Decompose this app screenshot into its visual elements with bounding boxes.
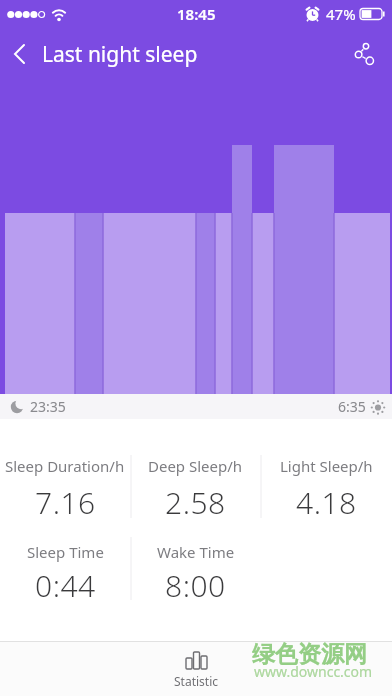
- staticText: Deep Sleep/h: [148, 456, 243, 476]
- staticText: 2.58: [165, 482, 226, 523]
- staticText: www.downcc.com: [254, 662, 373, 681]
- staticText: 4.18: [296, 482, 357, 523]
- staticText: 7.16: [35, 482, 96, 523]
- staticText: 23:35: [30, 397, 66, 416]
- staticText: 0:44: [35, 565, 96, 606]
- staticText: Statistic: [174, 673, 219, 689]
- staticText: 绿色资源网: [252, 640, 367, 669]
- button[interactable]: Statistic: [156, 641, 236, 696]
- staticText: 18:45: [177, 4, 216, 24]
- staticText: Last night sleep: [42, 40, 198, 69]
- staticText: Sleep Duration/h: [5, 456, 125, 476]
- staticText: Light Sleep/h: [280, 456, 373, 476]
- staticText: 47%: [326, 4, 356, 24]
- staticText: Sleep Time: [27, 542, 104, 562]
- button[interactable]: [344, 28, 392, 84]
- staticText: 6:35: [338, 397, 366, 416]
- button[interactable]: [0, 28, 40, 84]
- staticText: Wake Time: [157, 542, 235, 562]
- staticText: 8:00: [165, 565, 226, 606]
